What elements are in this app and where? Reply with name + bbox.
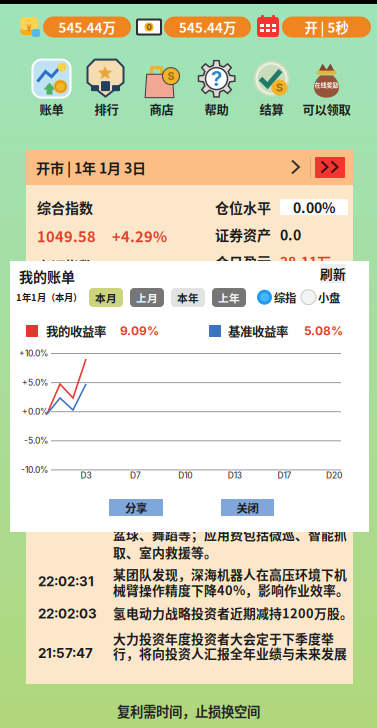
staticText: 证券资产	[215, 224, 271, 245]
staticText: 可以领取	[302, 101, 350, 118]
staticText: 0	[146, 22, 151, 32]
staticText: 复利需时间，止损换空间	[117, 701, 260, 721]
staticText: 某团队发现，深海机器人在高压环境下机	[113, 564, 347, 583]
staticText: 1049.58	[37, 225, 96, 246]
staticText: 本年	[177, 290, 199, 305]
button[interactable]: 分享	[109, 499, 163, 516]
staticText: 小盘	[318, 289, 340, 305]
staticText: D13	[228, 470, 242, 481]
staticText: 仓位水平	[215, 197, 271, 217]
staticText: +5.0%	[22, 377, 48, 388]
staticText: 本月	[95, 290, 117, 305]
staticText: 上月	[136, 290, 158, 305]
staticText: 氢电动力战略投资者近期减持1200万股。	[113, 603, 353, 622]
staticText: 21:57:47	[38, 645, 93, 661]
staticText: 商店	[149, 101, 173, 118]
staticText: 分享	[125, 499, 147, 516]
staticText: 5.08%	[304, 324, 343, 338]
staticText: 1年1月（本月）	[16, 290, 82, 304]
staticText: +4.29%	[112, 225, 167, 246]
button[interactable]: 关闭	[221, 499, 274, 516]
button[interactable]: 本年	[171, 288, 205, 307]
staticText: ¥	[26, 22, 31, 34]
staticText: D7	[130, 470, 141, 481]
staticText: 帮助	[204, 101, 228, 118]
staticText: 在线奖励	[314, 80, 338, 89]
button[interactable]: 账单	[24, 58, 79, 120]
staticText: 我的收益率	[46, 322, 106, 340]
staticText: 0.00%	[293, 197, 335, 217]
staticText: ?	[211, 66, 222, 91]
button[interactable]: S	[134, 58, 189, 120]
staticText: 取、室内救援等。	[113, 543, 217, 561]
staticText: 28.11万	[280, 251, 331, 272]
staticText: 综合指数	[37, 197, 93, 217]
staticText: 545.44万	[179, 17, 236, 37]
staticText: 械臂操作精度下降40%，影响作业效率。	[113, 580, 349, 599]
button[interactable]: 刷新	[320, 264, 346, 283]
staticText: 刷新	[320, 264, 346, 283]
staticText: 结算	[259, 101, 283, 118]
button[interactable]: 快进	[315, 157, 345, 178]
button[interactable]: S	[244, 58, 299, 120]
staticText: -5.0%	[24, 436, 48, 446]
staticText: 22:02:03	[38, 606, 97, 622]
staticText: 上年	[218, 290, 240, 305]
staticText: 账单	[39, 101, 63, 118]
staticText: 合日盈亏	[215, 251, 271, 272]
button[interactable]: 545.44万	[43, 16, 131, 37]
staticText: 0.0	[280, 224, 301, 245]
staticText: S	[167, 70, 174, 83]
staticText: 开 | 5秒	[304, 17, 348, 37]
button[interactable]: 综指	[257, 289, 296, 305]
staticText: +10.0%	[19, 348, 48, 359]
button[interactable]: 开 | 5秒	[282, 16, 371, 37]
staticText: 大力投资年度投资者大会定于下季度举	[113, 629, 334, 647]
staticText: S	[276, 81, 283, 94]
button[interactable]: 小盘	[301, 289, 340, 305]
staticText: D17	[277, 470, 291, 481]
staticText: 上证指数	[37, 255, 93, 276]
button[interactable]: 排行	[79, 58, 134, 120]
button[interactable]: 上年	[212, 288, 246, 307]
staticText: 22:02:31	[38, 573, 94, 589]
staticText: D10	[178, 470, 192, 481]
staticText: +0.0%	[22, 407, 48, 417]
staticText: 基准收益率	[228, 322, 288, 340]
staticText: D3	[80, 470, 91, 481]
staticText: 盆球、舞蹈等；应用费包括微巡、智能抓	[113, 525, 347, 543]
staticText: 我的账单	[19, 266, 75, 286]
staticText: -10.0%	[21, 465, 48, 475]
button[interactable]: 在线奖励	[299, 58, 354, 120]
staticText: 545.44万	[58, 17, 115, 37]
button[interactable]: 上月	[130, 288, 164, 307]
button[interactable]: 本月	[89, 288, 123, 307]
staticText: 开市 | 1年 1月 3日	[36, 157, 146, 178]
staticText: 行，将向投资人汇报全年业绩与未来发展	[113, 644, 347, 662]
staticText: D20	[326, 470, 342, 481]
button[interactable]: 545.44万	[164, 16, 251, 37]
staticText: 综指	[274, 289, 296, 305]
button[interactable]: ?	[189, 58, 244, 120]
staticText: 关闭	[236, 499, 258, 516]
button[interactable]: 下一步	[287, 155, 307, 179]
staticText: 排行	[94, 101, 118, 118]
staticText: 9.09%	[120, 324, 159, 338]
